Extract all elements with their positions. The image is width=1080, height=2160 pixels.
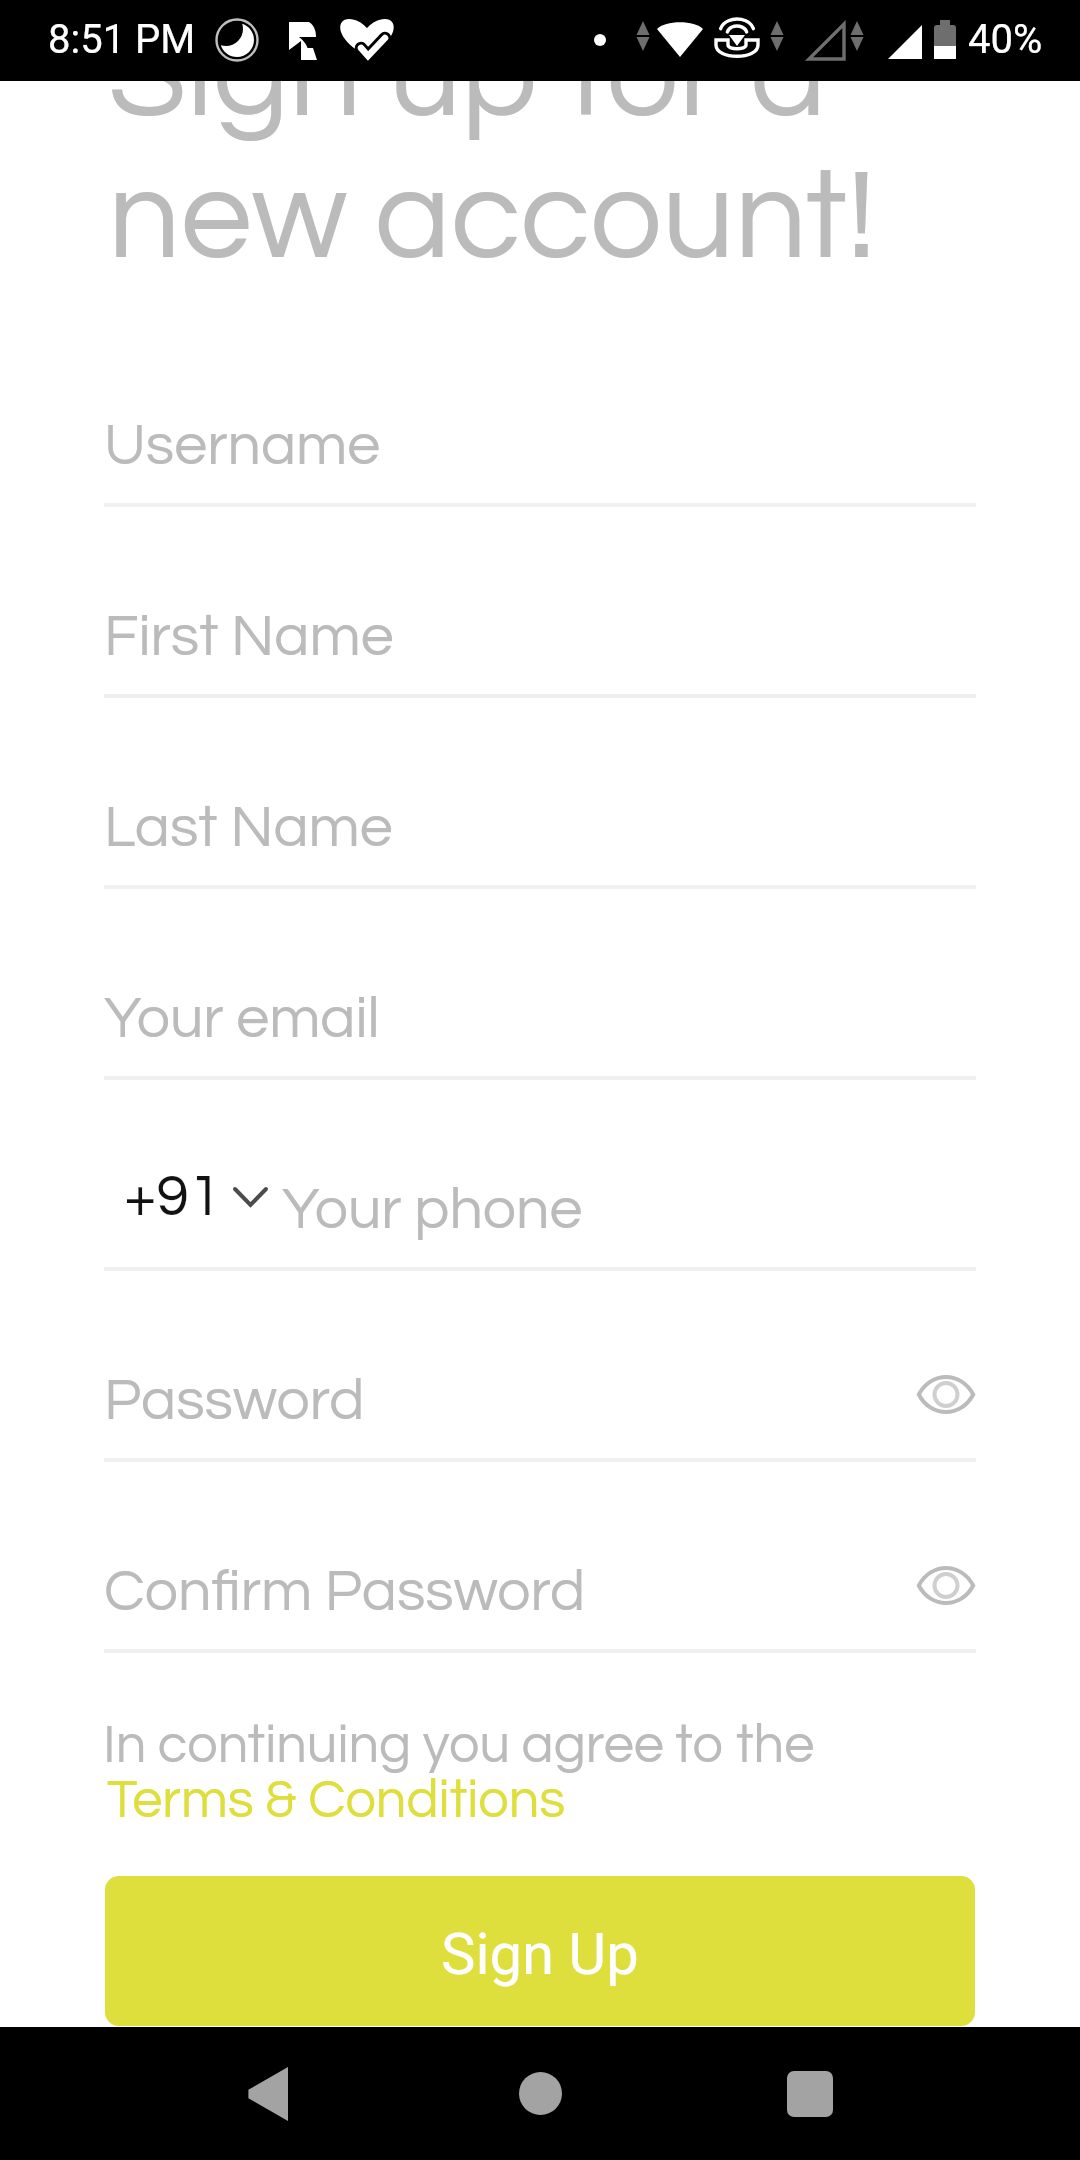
staticText: Confirm Password [104,1562,586,1623]
staticText: Your email [104,989,380,1050]
staticText: 8:51 PM [48,16,196,63]
staticText: First Name [104,607,394,668]
button[interactable]: Sign Up [105,1876,975,2026]
button[interactable]: +91 [124,1156,253,1268]
button[interactable]: Your email [104,965,976,1077]
button[interactable]: Show password [894,1533,998,1637]
staticText: Terms & Conditions [107,1773,566,1829]
button[interactable]: Show password [894,1342,998,1446]
button[interactable]: First Name [104,583,976,695]
staticText: Password [104,1371,365,1432]
button[interactable]: Username [104,392,976,504]
button[interactable]: Home [468,2027,612,2160]
staticText: Username [104,416,381,477]
staticText: In continuing you agree to the [103,1718,815,1774]
staticText: Sign Up [441,1920,639,1988]
button[interactable]: Confirm Password [104,1538,976,1650]
staticText: Your phone [282,1180,583,1241]
button[interactable]: Terms & Conditions [107,1773,566,1829]
staticText: Sign up for a new account! [108,10,876,284]
button[interactable]: Back [195,2027,339,2160]
staticText: 40% [968,16,1043,63]
button[interactable]: Password [104,1347,976,1459]
staticText: +91 [124,1167,222,1228]
button[interactable]: Last Name [104,774,976,886]
staticText: Last Name [104,798,393,859]
button[interactable]: Recent apps [738,2027,882,2160]
